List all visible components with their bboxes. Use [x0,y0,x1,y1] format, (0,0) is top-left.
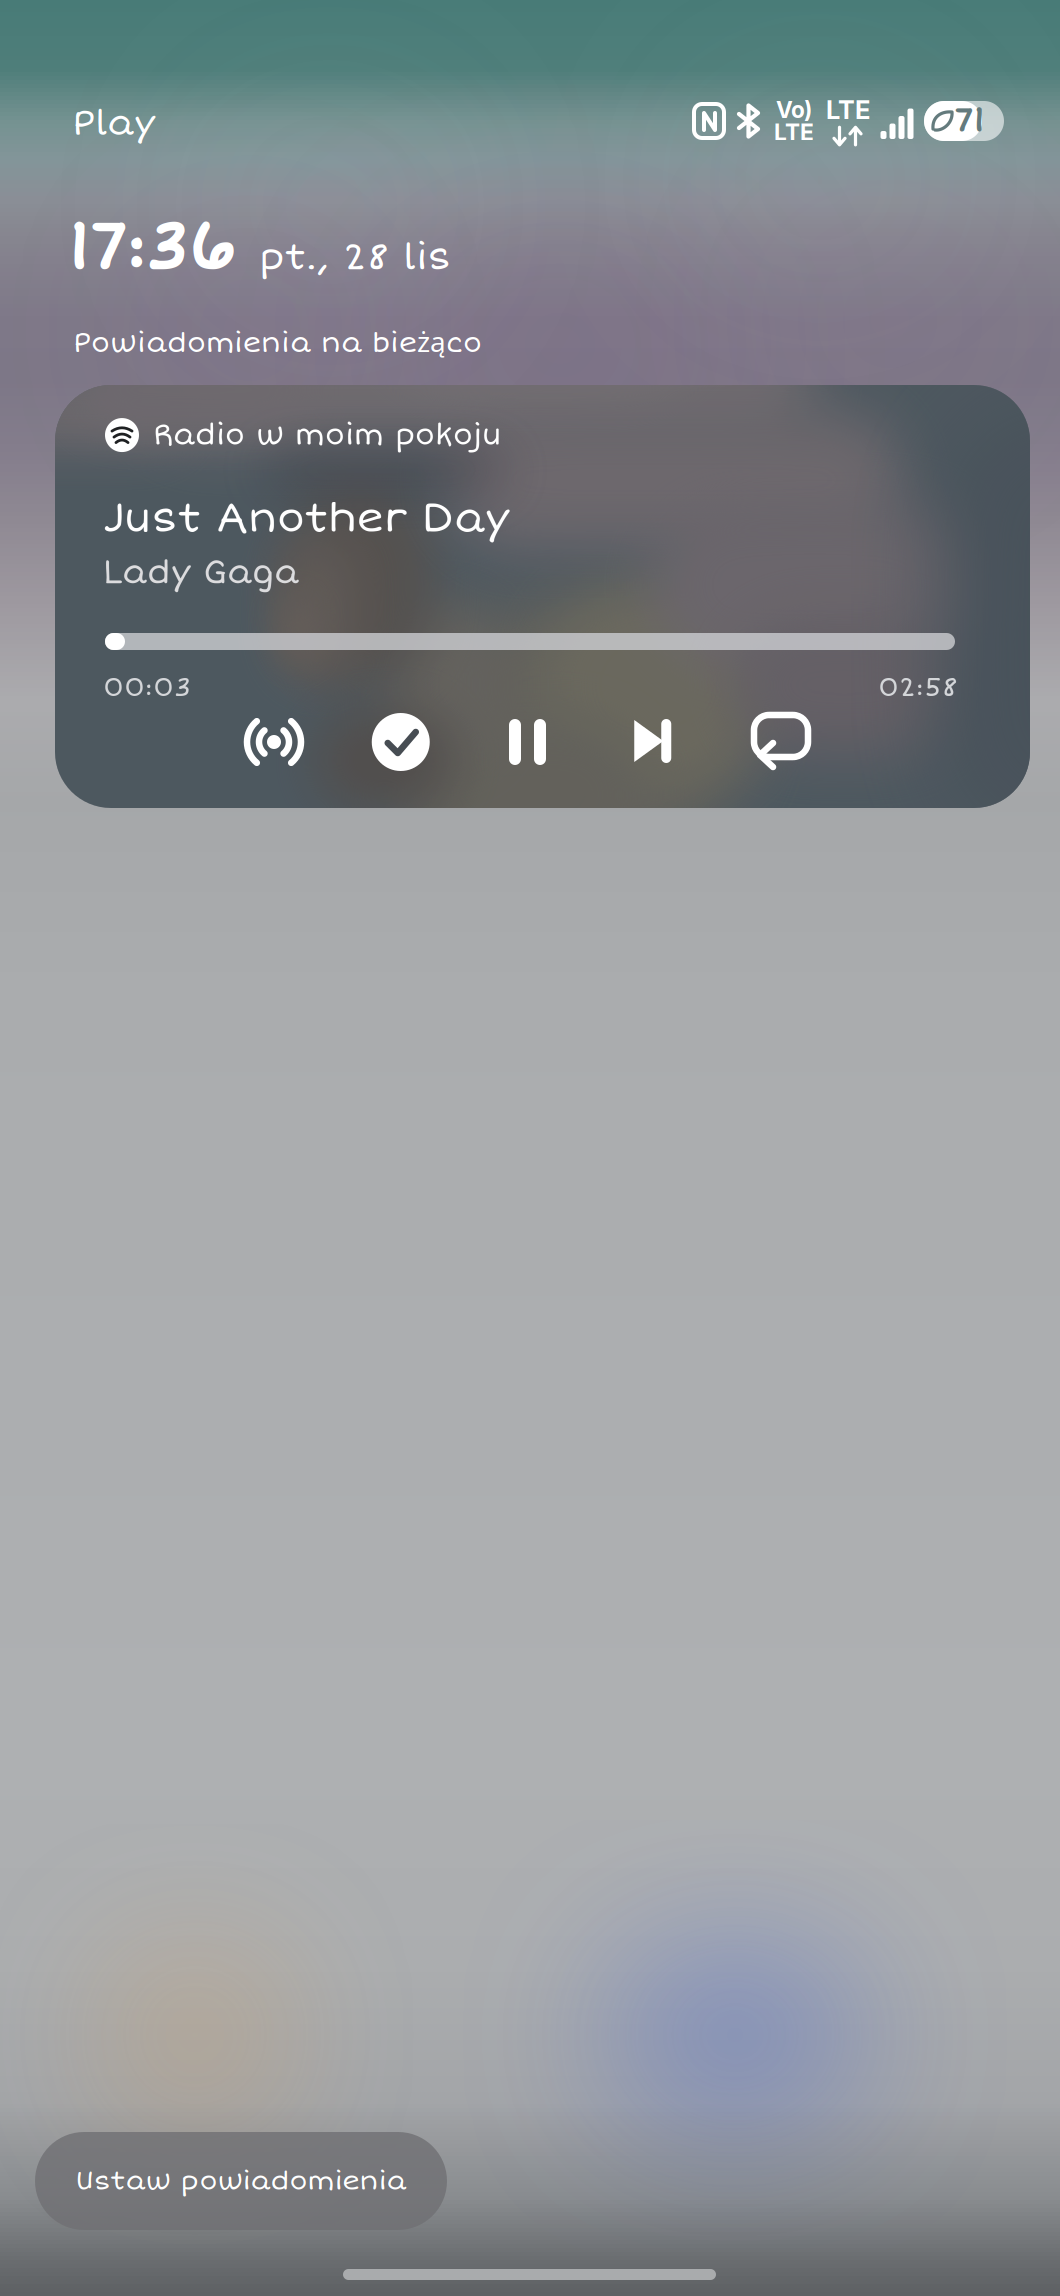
button[interactable]: Pause [498,713,556,771]
staticText: 02:58 [878,671,958,704]
button[interactable]: Cast to device [245,713,303,771]
button[interactable]: Radio w moim pokoju [105,417,501,453]
staticText: Lady Gaga [103,552,299,593]
staticText: LTE [826,95,870,125]
button[interactable]: Saved to library [372,713,430,771]
staticText: 17:36 [67,207,235,289]
staticText: Play [72,101,155,145]
staticText: Ustaw powiadomienia [75,2165,406,2197]
staticText: LTE [774,118,814,146]
button[interactable]: Next track [625,713,683,771]
staticText: 71 [954,100,984,141]
staticText: Vo) [776,96,812,123]
button[interactable]: Repeat [752,713,810,771]
staticText: pt., 28 lis [259,234,451,280]
staticText: Just Another Day [103,493,509,544]
staticText: Radio w moim pokoju [153,417,501,453]
button[interactable]: Ustaw powiadomienia [35,2132,447,2230]
staticText: 00:03 [103,671,191,704]
staticText: Powiadomienia na bieżąco [73,322,482,360]
